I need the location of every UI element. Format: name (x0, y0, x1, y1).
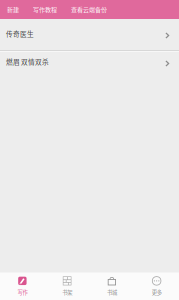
button[interactable]: 写作教程 (26, 0, 64, 19)
button[interactable]: 新建 (0, 0, 26, 19)
staticText: 写作 (17, 288, 27, 296)
staticText: 新建 (7, 5, 19, 14)
button[interactable]: 书城 (89, 272, 134, 300)
staticText: 燃眉 双情双杀 (6, 57, 49, 66)
staticText: 更多 (152, 288, 162, 296)
button[interactable]: 燃眉 双情双杀 (0, 52, 179, 73)
button[interactable]: 书架 (45, 272, 90, 300)
button[interactable]: 更多 (134, 272, 179, 300)
staticText: 传奇医生 (6, 29, 34, 38)
button[interactable]: 传奇医生 (0, 19, 179, 50)
button[interactable]: 查看云端备份 (64, 0, 114, 19)
staticText: 写作教程 (33, 5, 57, 14)
staticText: 书城 (107, 288, 117, 296)
staticText: 书架 (62, 288, 72, 296)
button[interactable]: 写作 (0, 272, 45, 300)
staticText: 查看云端备份 (71, 5, 107, 14)
